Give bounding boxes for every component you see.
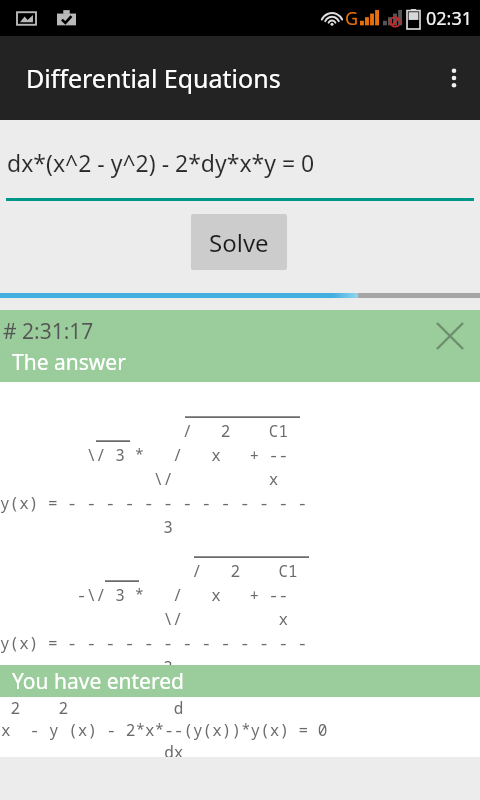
staticText: y(x) = - - - - - - - - - - - - - — [0, 492, 308, 514]
staticText: Solve — [209, 226, 269, 259]
staticText: y(x) = - - - - - - - - - - - - - — [0, 632, 308, 654]
button[interactable]: More options — [428, 52, 480, 104]
staticText: You have entered — [12, 667, 184, 696]
staticText: G — [345, 6, 359, 31]
staticText: 02:31 — [426, 6, 473, 31]
staticText: \/ 3 * / x + -- — [0, 444, 289, 466]
staticText: # 2:31:17 — [3, 317, 94, 346]
staticText: \/ x — [0, 608, 289, 630]
staticText: / 2 C1 — [0, 420, 289, 442]
staticText: dx — [1, 741, 184, 757]
staticText: 2 2 d — [1, 697, 184, 719]
button[interactable]: Solve — [191, 214, 287, 270]
button[interactable]: Close — [428, 314, 472, 358]
staticText: Differential Equations — [26, 61, 281, 95]
staticText: / 2 C1 — [0, 560, 298, 582]
staticText: 3 — [0, 516, 173, 538]
button[interactable]: dx*(x^2 - y^2) - 2*dy*x*y = 0 — [0, 120, 480, 198]
staticText: x - y (x) - 2*x*--(y(x))*y(x) = 0 — [1, 719, 328, 741]
staticText: dx*(x^2 - y^2) - 2*dy*x*y = 0 — [7, 147, 315, 178]
staticText: The answer — [12, 348, 126, 377]
staticText: \/ x — [0, 468, 279, 490]
staticText: 3 — [0, 656, 173, 678]
staticText: -\/ 3 * / x + -- — [0, 584, 289, 606]
